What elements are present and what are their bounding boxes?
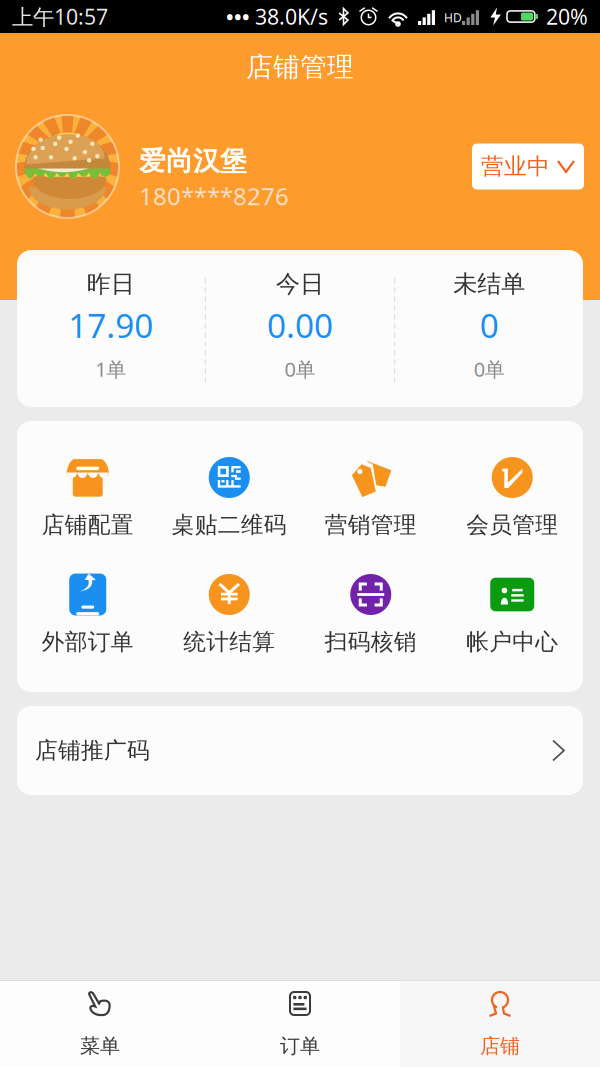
button[interactable]: 营业中 [472,143,584,189]
button[interactable]: 店铺推广码 [17,706,583,795]
staticText: 38.0K/s [255,2,328,31]
staticText: 菜单 [80,1034,120,1058]
staticText: 营业中 [481,153,550,180]
staticText: 会员管理 [466,511,558,539]
staticText: 1单 [95,356,126,382]
button[interactable]: 菜单 [0,981,200,1067]
staticText: 未结单 [453,269,525,299]
staticText: 今日 [276,269,324,299]
button[interactable]: 店铺 [400,981,600,1067]
staticText: 0单 [284,356,315,382]
staticText: 爱尚汉堡 [139,145,247,177]
button[interactable]: 订单 [200,981,400,1067]
staticText: 180****8276 [139,180,289,212]
staticText: 17.90 [68,303,153,347]
staticText: 0单 [474,356,505,382]
staticText: 扫码核销 [325,628,417,656]
staticText: 0 [480,303,499,347]
staticText: HD [444,9,462,25]
button[interactable]: 统计结算 [158,538,300,655]
staticText: ••• [226,3,250,30]
staticText: 0.00 [267,303,333,347]
staticText: 店铺管理 [246,51,354,83]
staticText: 外部订单 [42,628,134,656]
staticText: 店铺 [480,1034,520,1058]
staticText: 桌贴二维码 [172,511,287,539]
staticText: 帐户中心 [466,628,558,656]
button[interactable]: 会员管理 [441,421,583,538]
staticText: 20% [546,2,588,31]
button[interactable]: 扫码核销 [300,538,441,655]
button[interactable]: 营销管理 [300,421,441,538]
staticText: 店铺配置 [42,511,134,539]
staticText: 上午10:57 [12,2,108,31]
button[interactable]: 店铺配置 [17,421,158,538]
button[interactable]: 外部订单 [17,538,158,655]
staticText: 营销管理 [325,511,417,539]
staticText: 订单 [280,1034,320,1058]
staticText: 店铺推广码 [35,737,150,764]
staticText: 昨日 [87,269,135,299]
button[interactable]: 桌贴二维码 [158,421,300,538]
staticText: 统计结算 [183,628,275,656]
button[interactable]: 帐户中心 [441,538,583,655]
